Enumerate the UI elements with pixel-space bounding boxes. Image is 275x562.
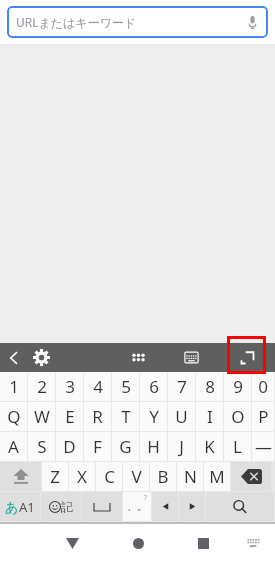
staticText: B xyxy=(157,465,169,488)
button[interactable]: U xyxy=(168,402,195,431)
button[interactable]: 9 xyxy=(224,372,251,401)
button[interactable]: E xyxy=(56,402,83,431)
button[interactable]: Back xyxy=(52,524,92,562)
staticText: F xyxy=(93,435,102,458)
button[interactable]: 2 xyxy=(28,372,55,401)
staticText: 0 xyxy=(258,375,268,398)
button[interactable]: T xyxy=(112,402,139,431)
button[interactable]: B xyxy=(150,462,176,491)
staticText: 9 xyxy=(233,375,243,398)
button[interactable]: H xyxy=(140,432,167,461)
button[interactable]: P xyxy=(252,402,274,431)
button[interactable]: G xyxy=(112,432,139,461)
button[interactable]: S xyxy=(28,432,55,461)
staticText: A xyxy=(8,435,19,458)
staticText: V xyxy=(131,465,142,488)
button[interactable]: L xyxy=(224,432,251,461)
button[interactable]: Right xyxy=(179,492,205,521)
button[interactable]: A xyxy=(0,432,27,461)
staticText: Z xyxy=(50,465,60,488)
staticText: 。 xyxy=(137,500,147,513)
button[interactable]: C xyxy=(96,462,122,491)
button[interactable]: Left xyxy=(152,492,178,521)
staticText: K xyxy=(204,435,215,458)
button[interactable]: M xyxy=(204,462,230,491)
button[interactable]: Home xyxy=(118,524,158,562)
button[interactable]: Input mode xyxy=(0,492,40,521)
button[interactable]: Space xyxy=(82,492,122,521)
button[interactable]: 6 xyxy=(140,372,167,401)
button[interactable]: Resize keyboard xyxy=(233,343,261,372)
staticText: 記 xyxy=(61,499,73,514)
button[interactable]: 8 xyxy=(196,372,223,401)
staticText: P xyxy=(258,405,269,428)
button[interactable]: Voice search xyxy=(241,11,263,33)
staticText: 、 xyxy=(127,500,137,513)
button[interactable]: URLまたはキーワード xyxy=(7,6,268,38)
staticText: W xyxy=(34,405,50,428)
staticText: E xyxy=(65,405,75,428)
button[interactable]: More options xyxy=(124,343,152,372)
button[interactable]: Punctuation xyxy=(123,492,151,521)
button[interactable]: Search xyxy=(206,492,274,521)
staticText: C xyxy=(104,465,115,488)
button[interactable]: O xyxy=(224,402,251,431)
staticText: S xyxy=(37,435,47,458)
button[interactable]: Settings xyxy=(27,343,55,372)
staticText: Y xyxy=(149,405,159,428)
button[interactable]: 5 xyxy=(112,372,139,401)
staticText: 5 xyxy=(121,375,131,398)
button[interactable]: J xyxy=(168,432,195,461)
button[interactable]: Z xyxy=(42,462,68,491)
staticText: L xyxy=(233,435,242,458)
staticText: I xyxy=(207,405,213,428)
button[interactable]: 7 xyxy=(168,372,195,401)
button[interactable]: 1 xyxy=(0,372,27,401)
staticText: ? xyxy=(144,493,148,503)
staticText: J xyxy=(179,435,184,458)
staticText: R xyxy=(92,405,103,428)
staticText: Q xyxy=(7,405,21,428)
button[interactable]: Backspace xyxy=(231,462,271,491)
staticText: 8 xyxy=(205,375,215,398)
button[interactable]: N xyxy=(177,462,203,491)
staticText: M xyxy=(209,465,225,488)
button[interactable]: V xyxy=(123,462,149,491)
button[interactable]: Q xyxy=(0,402,27,431)
button[interactable]: Emoji xyxy=(41,492,81,521)
button[interactable]: 3 xyxy=(56,372,83,401)
staticText: G xyxy=(119,435,132,458)
button[interactable]: 4 xyxy=(84,372,111,401)
staticText: H xyxy=(147,435,160,458)
button[interactable]: 0 xyxy=(252,372,274,401)
button[interactable]: F xyxy=(84,432,111,461)
staticText: 2 xyxy=(37,375,47,398)
button[interactable]: Back xyxy=(0,343,27,372)
staticText: U xyxy=(175,405,188,428)
staticText: O xyxy=(231,405,245,428)
button[interactable]: D xyxy=(56,432,83,461)
staticText: 1 xyxy=(9,375,19,398)
button[interactable]: I xyxy=(196,402,223,431)
button[interactable]: Recents xyxy=(183,524,223,562)
button[interactable]: Keyboard layout xyxy=(177,343,205,372)
staticText: 3 xyxy=(65,375,75,398)
staticText: 7 xyxy=(177,375,187,398)
button[interactable]: Switch keyboard xyxy=(233,524,273,562)
staticText: 6 xyxy=(149,375,159,398)
staticText: D xyxy=(63,435,76,458)
button[interactable]: X xyxy=(69,462,95,491)
button[interactable]: R xyxy=(84,402,111,431)
staticText: T xyxy=(121,405,131,428)
staticText: A1 xyxy=(19,498,35,516)
button[interactable]: — xyxy=(252,432,274,461)
button[interactable]: Y xyxy=(140,402,167,431)
staticText: 4 xyxy=(93,375,103,398)
staticText: N xyxy=(184,465,197,488)
button[interactable]: W xyxy=(28,402,55,431)
button[interactable]: K xyxy=(196,432,223,461)
staticText: — xyxy=(255,435,272,458)
staticText: X xyxy=(77,465,87,488)
staticText: あ xyxy=(5,499,19,515)
button[interactable]: Shift xyxy=(0,462,41,491)
